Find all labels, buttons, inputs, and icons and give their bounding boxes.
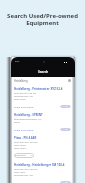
staticText: Add to cart (60, 105, 71, 108)
button[interactable]: Pitsa - PN 4 ABS (14, 136, 71, 163)
staticText: Heidelberg - Printmaster XYZ 52-4 (14, 87, 63, 91)
button[interactable]: Heidelberg - Heidelberger SM 102-4 (14, 163, 71, 183)
staticText: print unit:4 (14, 146, 27, 149)
staticText: year: 2005 (14, 97, 26, 100)
button[interactable]: Heidelberg - SPRINT (14, 113, 71, 136)
staticText: Show from Office (14, 128, 34, 131)
staticText: Heidelberg - Heidelberger SM 102-4 (14, 163, 65, 167)
staticText: ref:01 (14, 120, 21, 123)
staticText: Pitsa - PN 4 ABS (14, 136, 37, 140)
staticText: Reference (15, 154, 26, 157)
staticText: Add to cart (60, 128, 71, 131)
staticText: Show from Office (14, 105, 34, 108)
staticText: Heidelberg - SPRINT (14, 113, 43, 117)
staticText: Search (38, 70, 49, 74)
staticText: printing unit: 4/0 (14, 173, 33, 176)
button[interactable]: Heidelberg (12, 77, 73, 84)
staticText: Heidelberg (14, 79, 28, 83)
button[interactable]: Reference (14, 153, 34, 158)
staticText: Add to cart (60, 181, 71, 183)
staticText: year: 2003 (14, 143, 26, 146)
other: Clear search (68, 79, 71, 82)
staticText: mainufacturing year: NA (14, 117, 42, 120)
staticText: Search Used/Pre-owned Equipment (0, 12, 85, 27)
button[interactable]: Add to cart (60, 128, 71, 131)
button[interactable]: Add to cart (60, 181, 71, 183)
staticText: 1 (31, 154, 33, 157)
staticText: printing unit: 4/0 (14, 94, 33, 97)
staticText: 9:41 (15, 60, 20, 63)
button[interactable]: Heidelberg - Printmaster XYZ 52-4 (14, 87, 71, 113)
staticText: Max size 48 x 336 cm (14, 140, 38, 143)
staticText: Max size 48 x 336 cm (14, 167, 38, 170)
staticText: year: 2001 (14, 170, 26, 173)
staticText: Max size 36 x 52 cm (14, 91, 37, 94)
button[interactable]: Add to cart (60, 105, 71, 108)
